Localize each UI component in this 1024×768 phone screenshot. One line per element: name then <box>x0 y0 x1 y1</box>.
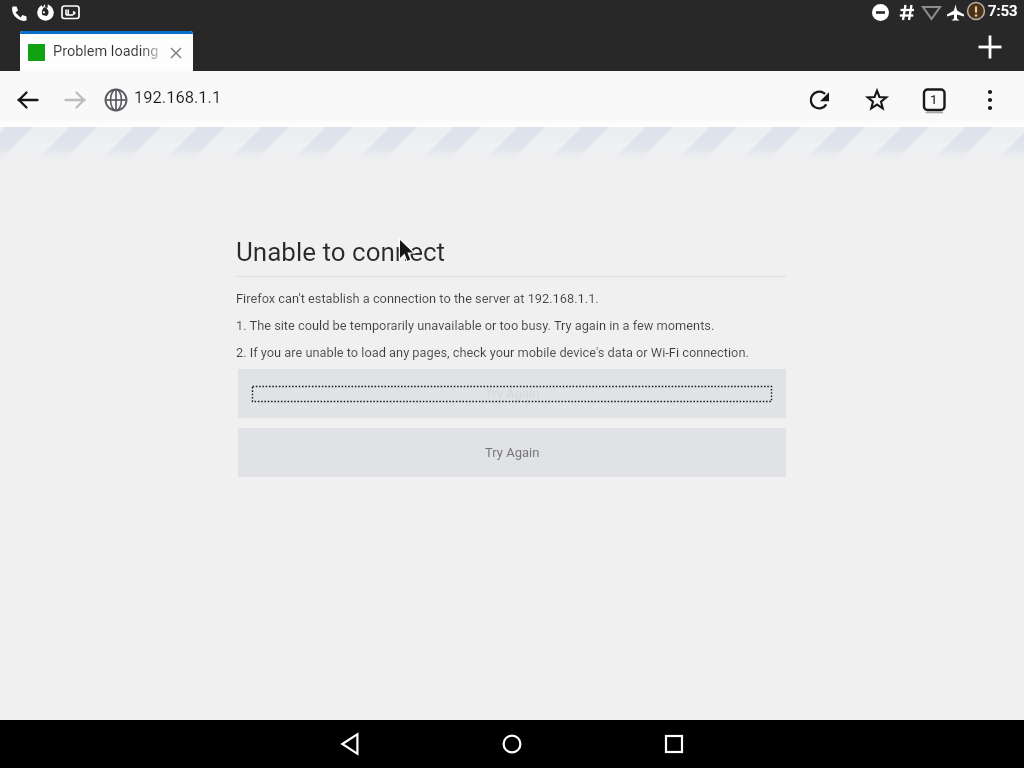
staticText: 7:53 <box>988 2 1018 20</box>
button[interactable]: Recents <box>650 720 698 768</box>
staticText: Unable to connect <box>236 237 446 267</box>
button[interactable]: Close tab <box>162 39 190 67</box>
button[interactable]: New tab <box>967 24 1013 70</box>
button[interactable]: Try Again <box>238 428 786 477</box>
button[interactable]: Back <box>326 720 374 768</box>
button[interactable]: Home <box>488 720 536 768</box>
button[interactable]: 192.168.1.1 <box>134 88 534 114</box>
button[interactable]: More options <box>968 78 1012 122</box>
button[interactable]: Try Again <box>238 369 786 418</box>
staticText: 1. The site could be temporarily unavail… <box>236 318 715 333</box>
button[interactable]: Back <box>6 78 50 122</box>
staticText: Firefox can't establish a connection to … <box>236 291 599 306</box>
button[interactable]: Problem loading <box>20 31 193 71</box>
staticText: Problem loading <box>53 43 159 60</box>
staticText: 1 <box>930 92 938 107</box>
staticText: 2. If you are unable to load any pages, … <box>236 345 749 360</box>
staticText: Try Again <box>485 386 540 401</box>
staticText: Try Again <box>485 445 540 460</box>
button[interactable]: Reload <box>798 78 842 122</box>
staticText: 192.168.1.1 <box>134 88 222 107</box>
button[interactable]: Tabs <box>912 78 956 122</box>
button[interactable]: Forward <box>53 78 97 122</box>
button[interactable]: Bookmark <box>855 78 899 122</box>
